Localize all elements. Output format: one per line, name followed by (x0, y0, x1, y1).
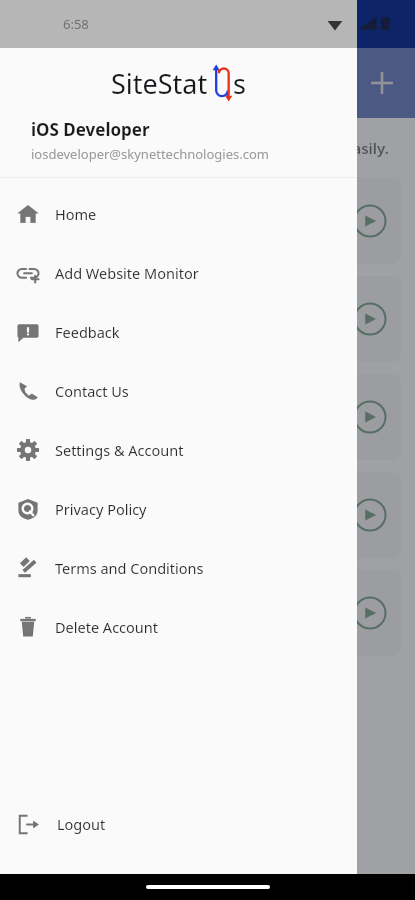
staticText: Logout (57, 814, 106, 834)
button[interactable]: example-site-3.com (14, 472, 401, 558)
button[interactable]: Add website monitor (361, 62, 403, 104)
staticText: Privacy Policy (55, 499, 147, 519)
staticText: Up • checked 2 min ago (28, 618, 150, 633)
staticText: iosdeveloper@skynettechnologies.com (31, 145, 269, 163)
staticText: Add Website Monitor (55, 263, 199, 283)
staticText: example-site-0.com (28, 201, 157, 220)
button[interactable]: Privacy Policy (0, 479, 357, 538)
staticText: 6:58 (63, 15, 89, 33)
button[interactable]: example-site-1.com (14, 276, 401, 362)
staticText: Feedback (55, 322, 120, 342)
button[interactable]: example-site-0.com (14, 178, 401, 264)
button[interactable]: Contact Us (0, 361, 357, 420)
staticText: iOS Developer (31, 118, 150, 141)
staticText: Terms and Conditions (55, 558, 204, 578)
staticText: Settings & Account (55, 440, 184, 460)
button[interactable]: Logout (0, 796, 357, 852)
staticText: Home (55, 204, 97, 224)
button[interactable]: Feedback (0, 302, 357, 361)
staticText: Monitor your websites easily. (175, 138, 389, 158)
button[interactable]: example-site-2.com (14, 374, 401, 460)
button[interactable]: Terms and Conditions (0, 538, 357, 597)
button[interactable]: example-site-4.com (14, 570, 401, 656)
staticText: Contact Us (55, 381, 129, 401)
button[interactable]: Delete Account (0, 597, 357, 656)
staticText: s (233, 65, 246, 102)
staticText: SiteStat (111, 65, 208, 102)
button[interactable]: Home (0, 184, 357, 243)
staticText: Delete Account (55, 617, 158, 637)
staticText: example-site-2.com (28, 397, 157, 416)
button[interactable]: Add Website Monitor (0, 243, 357, 302)
staticText: Up • checked 2 min ago (28, 324, 150, 339)
button[interactable]: Settings & Account (0, 420, 357, 479)
staticText: example-site-3.com (28, 495, 157, 514)
